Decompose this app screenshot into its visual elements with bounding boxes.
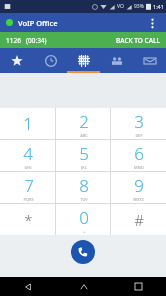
staticText: ABC (80, 133, 88, 138)
staticText: * (24, 210, 33, 230)
staticText: TUV (80, 197, 88, 202)
staticText: (00:34) (26, 36, 47, 45)
staticText: JKL (81, 165, 87, 170)
staticText: 1 (23, 112, 33, 135)
staticText: PQRS (23, 197, 34, 202)
staticText: VO (117, 3, 124, 10)
staticText: 2 (79, 110, 89, 133)
button[interactable]: 8 (56, 172, 111, 203)
button[interactable]: More options (144, 15, 160, 31)
staticText: BACK TO CALL (116, 36, 160, 45)
button[interactable]: 9 (111, 172, 166, 203)
button[interactable]: Call (71, 240, 95, 264)
staticText: 5 (79, 142, 89, 165)
button[interactable]: Home (56, 277, 111, 296)
staticText: 8 (79, 174, 89, 197)
button[interactable]: 6 (111, 140, 166, 171)
staticText: VoIP Office (18, 18, 58, 28)
staticText: 4 (23, 142, 33, 165)
button[interactable]: 4 (0, 140, 56, 171)
button[interactable]: 1126 (0, 32, 166, 48)
button[interactable]: Contacts (100, 48, 133, 73)
staticText: 93% (134, 3, 144, 10)
staticText: 3 (134, 110, 144, 133)
button[interactable]: 7 (0, 172, 56, 203)
button[interactable]: 0 (56, 204, 111, 235)
button[interactable]: Favorites (0, 48, 34, 73)
button[interactable]: Recents (111, 277, 166, 296)
staticText: 1126 (6, 36, 21, 45)
button[interactable]: Voicemail (133, 48, 166, 73)
staticText: 1:41 (153, 3, 164, 10)
staticText: 7 (24, 174, 34, 197)
button[interactable]: 5 (56, 140, 111, 171)
staticText: 9 (134, 174, 144, 197)
staticText: MNO (134, 165, 144, 170)
staticText: 6 (134, 142, 144, 165)
button[interactable]: Dialpad (67, 48, 100, 73)
button[interactable]: 1 (0, 108, 56, 139)
staticText: # (134, 210, 144, 230)
button[interactable]: # (111, 204, 166, 235)
staticText: 0 (79, 206, 89, 229)
staticText: DEF (135, 133, 143, 138)
button[interactable]: * (0, 204, 56, 235)
staticText: WXYZ (133, 197, 144, 202)
button[interactable]: Recents (34, 48, 67, 73)
button[interactable]: 2 (56, 108, 111, 139)
button[interactable]: Back (0, 277, 56, 296)
button[interactable]: 3 (111, 108, 166, 139)
staticText: + (83, 229, 86, 234)
staticText: GHI (24, 165, 32, 170)
